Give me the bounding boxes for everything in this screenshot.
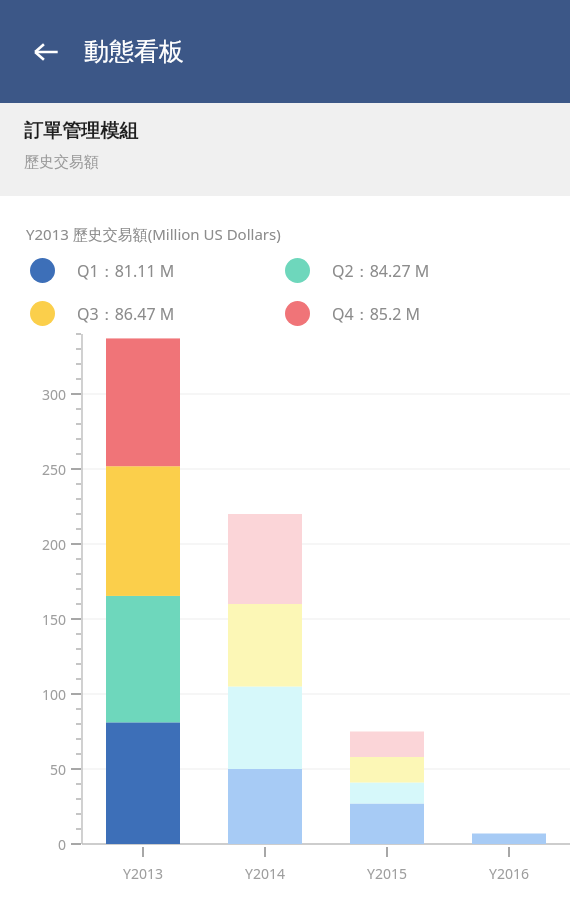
staticText: Q3：86.47 M bbox=[77, 303, 175, 325]
staticText: 150 bbox=[0, 610, 66, 629]
staticText: Y2013 歷史交易額(Million US Dollars) bbox=[26, 224, 281, 244]
button[interactable]: Back bbox=[22, 28, 70, 76]
staticText: 250 bbox=[0, 460, 66, 479]
staticText: Y2013 bbox=[123, 864, 163, 883]
staticText: Q4：85.2 M bbox=[332, 303, 421, 325]
staticText: 200 bbox=[0, 535, 66, 554]
staticText: Q1：81.11 M bbox=[77, 260, 175, 282]
staticText: 歷史交易額 bbox=[24, 153, 99, 172]
staticText: Q2：84.27 M bbox=[332, 260, 430, 282]
staticText: 訂單管理模組 bbox=[24, 119, 138, 143]
button[interactable]: Q2：84.27 M bbox=[285, 258, 570, 283]
button[interactable]: Q4：85.2 M bbox=[285, 301, 570, 326]
staticText: 0 bbox=[0, 835, 66, 854]
staticText: 100 bbox=[0, 685, 66, 704]
staticText: 動態看板 bbox=[84, 36, 184, 67]
button[interactable]: Q3：86.47 M bbox=[0, 301, 285, 326]
button[interactable]: Q1：81.11 M bbox=[0, 258, 285, 283]
staticText: Y2014 bbox=[245, 864, 285, 883]
staticText: Y2015 bbox=[367, 864, 407, 883]
staticText: 300 bbox=[0, 385, 66, 404]
staticText: 50 bbox=[0, 760, 66, 779]
staticText: Y2016 bbox=[489, 864, 529, 883]
